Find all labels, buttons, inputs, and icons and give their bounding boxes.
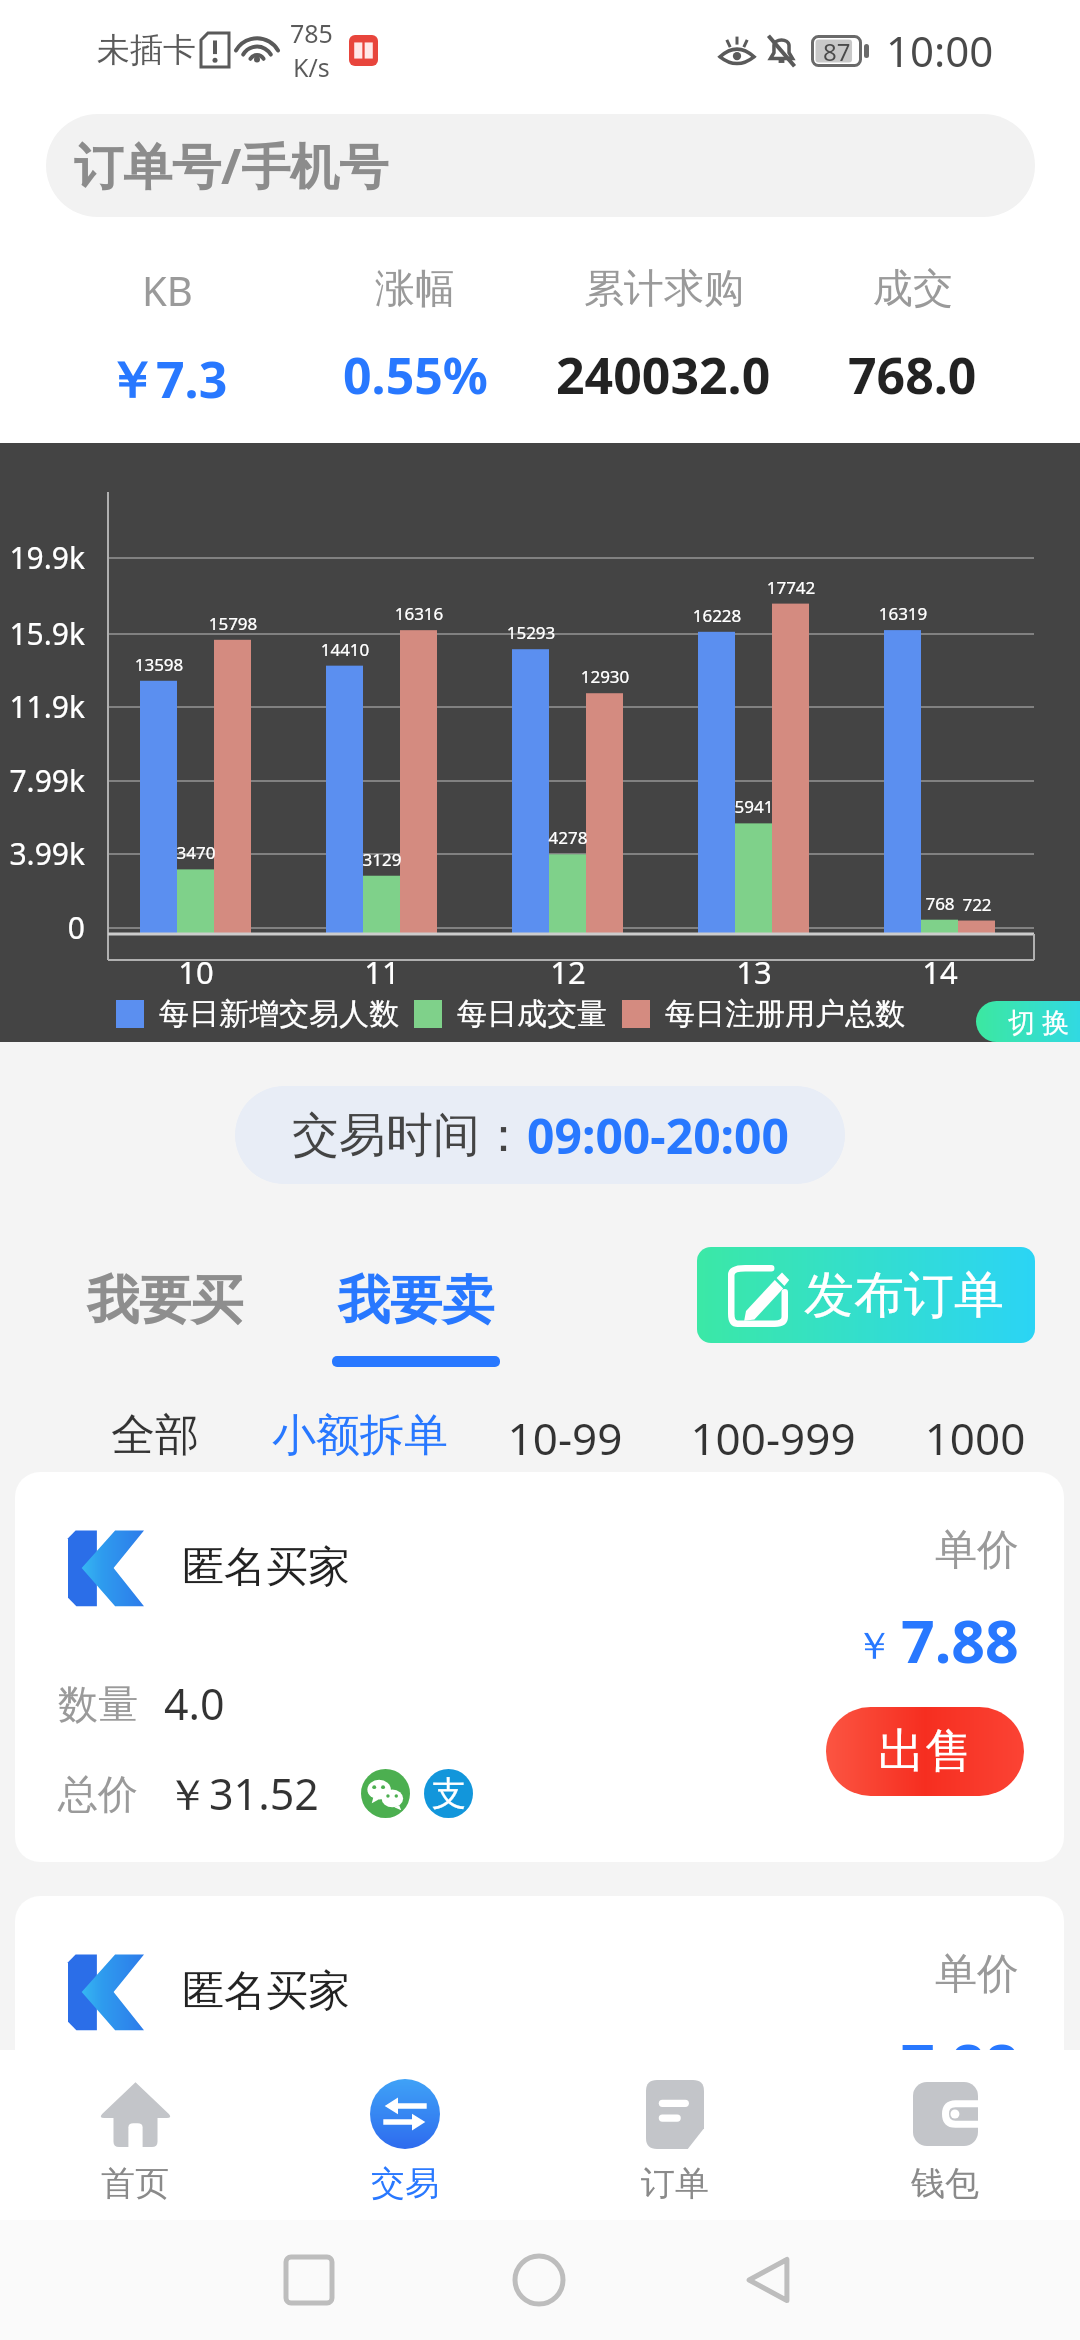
staticText: 发布订单 [804, 1264, 1004, 1327]
button[interactable]: 发布订单 [697, 1247, 1035, 1343]
staticText: 722 [917, 893, 1037, 916]
staticText: 13598 [99, 653, 219, 676]
button[interactable]: Recents [282, 2253, 336, 2307]
staticText: 3.99k [0, 833, 85, 874]
staticText: 0.55% [343, 341, 488, 409]
staticText: 每日新增交易人数 [159, 995, 399, 1033]
button[interactable]: 10-99 [455, 1408, 675, 1468]
button[interactable]: 钱包 [810, 2050, 1080, 2220]
button[interactable]: 小额拆单 [250, 1408, 470, 1463]
staticText: 匿名买家 [182, 1965, 350, 2018]
button[interactable]: 交易 [270, 2050, 540, 2220]
staticText: 0 [0, 907, 85, 948]
staticText: 匿名买家 [182, 1541, 350, 1594]
button[interactable]: 交易时间： [235, 1086, 845, 1184]
staticText: 7.88 [901, 1600, 1019, 1680]
staticText: K/s [293, 50, 330, 84]
staticText: 7.88 [901, 2024, 1019, 2104]
staticText: 3470 [136, 841, 256, 864]
staticText: 10-99 [455, 1408, 675, 1468]
button[interactable]: Home [512, 2253, 566, 2307]
staticText: 单价 [719, 1524, 1019, 1577]
button[interactable]: Back [741, 2253, 795, 2307]
staticText: 订单 [641, 2162, 709, 2205]
staticText: 11.9k [0, 686, 85, 727]
button[interactable]: 全部 [45, 1408, 265, 1463]
button[interactable]: 出售 [826, 1707, 1024, 1796]
staticText: 785 [290, 16, 333, 50]
staticText: 12930 [545, 665, 665, 688]
staticText: 3129 [322, 848, 442, 871]
staticText: 切 换 [1008, 1003, 1070, 1040]
staticText: 累计求购 [584, 263, 744, 313]
staticText: 87 [823, 35, 851, 67]
staticText: 小额拆单 [250, 1408, 470, 1463]
button[interactable]: 100-999 [663, 1408, 883, 1468]
staticText: 5941 [694, 795, 814, 818]
button[interactable]: 首页 [0, 2050, 270, 2220]
button[interactable]: 订单 [540, 2050, 810, 2220]
staticText: 768 [880, 892, 1000, 915]
staticText: 4278 [508, 826, 628, 849]
staticText: 每日成交量 [457, 995, 607, 1033]
staticText: 19.9k [0, 537, 85, 578]
staticText: 14410 [285, 638, 405, 661]
staticText: 15798 [173, 612, 293, 635]
staticText: 总价 [58, 1769, 138, 1819]
staticText: 14 [880, 951, 1000, 993]
staticText: 交易时间： [292, 1106, 527, 1165]
staticText: 16316 [359, 602, 479, 625]
staticText: ￥7.3 [106, 345, 228, 413]
staticText: 未插卡 [97, 29, 196, 71]
staticText: 涨幅 [375, 263, 455, 313]
staticText: 11 [322, 951, 442, 993]
staticText: 我要卖 [338, 1268, 494, 1334]
staticText: 09:00-20:00 [527, 1103, 789, 1168]
staticText: 768.0 [848, 341, 977, 409]
staticText: 16228 [657, 604, 777, 627]
button[interactable]: 我要买 [87, 1268, 243, 1334]
staticText: 4.0 [164, 1674, 225, 1733]
staticText: 13 [694, 951, 814, 993]
staticText: 17742 [731, 576, 851, 599]
staticText: KB [142, 263, 193, 317]
staticText: 订单号/手机号 [74, 132, 389, 199]
staticText: 数量 [58, 1679, 138, 1729]
staticText: 100-999 [663, 1408, 883, 1468]
button[interactable]: 订单号/手机号 [46, 114, 1035, 217]
staticText: 10:00 [886, 22, 994, 79]
staticText: 出售 [878, 1722, 972, 1781]
staticText: 支 [432, 1772, 466, 1815]
staticText: 每日注册用户总数 [665, 995, 905, 1033]
button[interactable]: 匿名买家 [15, 1472, 1064, 1862]
staticText: 10 [136, 951, 256, 993]
staticText: 15.9k [0, 613, 85, 654]
staticText: 我要买 [87, 1268, 243, 1334]
staticText: 240032.0 [556, 341, 771, 409]
button[interactable]: 切 换 [976, 1001, 1080, 1042]
staticText: ￥ [855, 1622, 893, 1670]
staticText: 12 [508, 951, 628, 993]
staticText: 16319 [843, 602, 963, 625]
button[interactable]: 我要卖 [332, 1268, 500, 1367]
staticText: 1000 [865, 1408, 1080, 1468]
staticText: 交易 [371, 2162, 439, 2205]
staticText: 钱包 [911, 2162, 979, 2205]
staticText: 单价 [719, 1948, 1019, 2001]
staticText: 7.99k [0, 760, 85, 801]
staticText: 首页 [101, 2162, 169, 2205]
button[interactable]: 匿名买家 [15, 1896, 1064, 2286]
staticText: 15293 [471, 621, 591, 644]
staticText: 成交 [873, 263, 953, 313]
button[interactable]: 1000 [865, 1408, 1080, 1468]
staticText: 全部 [45, 1408, 265, 1463]
staticText: ￥31.52 [166, 1764, 319, 1823]
